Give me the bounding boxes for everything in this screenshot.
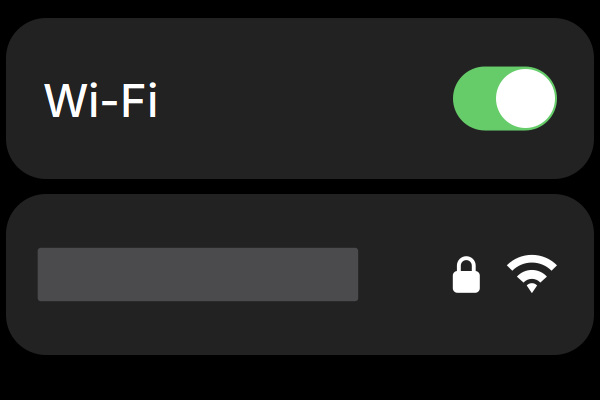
button[interactable] <box>6 194 594 355</box>
button[interactable]: Wi-Fi <box>6 18 594 179</box>
staticText: Wi-Fi <box>43 73 158 128</box>
